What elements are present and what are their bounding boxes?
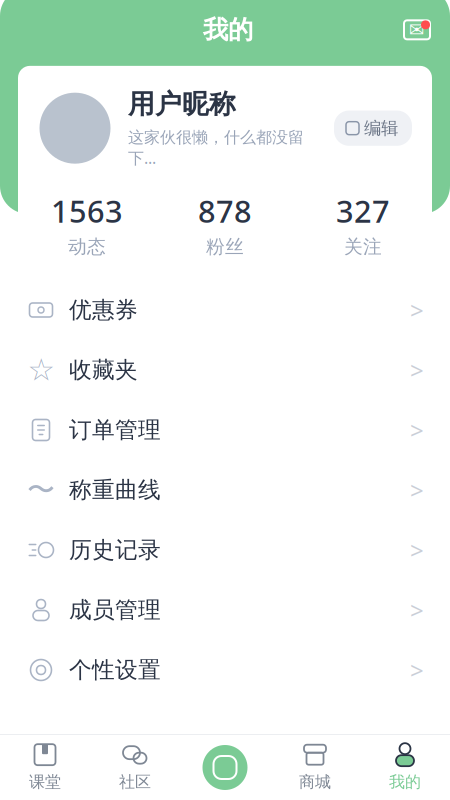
staticText: 编辑 (364, 117, 398, 139)
button[interactable]: 编辑 (334, 110, 412, 146)
button[interactable]: 历史记录 (0, 520, 450, 580)
button[interactable]: 商城 (270, 735, 360, 799)
button[interactable]: 1563 (18, 190, 156, 258)
staticText: > (410, 414, 424, 446)
staticText: 个性设置 (69, 656, 161, 684)
button[interactable]: 327 (294, 190, 432, 258)
button[interactable]: ☆ (0, 340, 450, 400)
staticText: 课堂 (29, 772, 61, 792)
button[interactable]: 订单管理 (0, 400, 450, 460)
staticText: 我的 (203, 14, 253, 45)
button[interactable]: 成员管理 (0, 580, 450, 640)
staticText: 成员管理 (69, 596, 161, 624)
staticText: 327 (336, 190, 390, 231)
staticText: 动态 (68, 235, 106, 258)
staticText: 历史记录 (69, 536, 161, 564)
staticText: 用户昵称 (128, 88, 236, 121)
button[interactable]: 课堂 (0, 735, 90, 799)
button[interactable]: 〜 (0, 460, 450, 520)
staticText: ✉ (409, 19, 425, 40)
button[interactable]: 我的 (360, 735, 450, 799)
staticText: 优惠券 (69, 296, 138, 324)
staticText: > (410, 294, 424, 326)
button[interactable]: 878 (156, 190, 294, 258)
staticText: 收藏夹 (69, 356, 138, 384)
staticText: 订单管理 (69, 416, 161, 444)
staticText: 〜 (27, 473, 55, 507)
staticText: 称重曲线 (69, 476, 161, 504)
button[interactable]: 消息 (396, 15, 438, 45)
staticText: 我的 (389, 772, 421, 792)
button[interactable]: 社区 (90, 735, 180, 799)
staticText: 1563 (51, 190, 123, 231)
staticText: ☆ (27, 353, 54, 387)
staticText: > (410, 654, 424, 686)
button[interactable]: 个性设置 (0, 640, 450, 700)
staticText: > (410, 534, 424, 566)
staticText: 878 (198, 190, 252, 231)
staticText: 商城 (299, 772, 331, 792)
staticText: 关注 (344, 235, 382, 258)
staticText: > (410, 354, 424, 386)
staticText: > (410, 474, 424, 506)
button[interactable]: 优惠券 (0, 280, 450, 340)
button[interactable]: 测量 (202, 745, 247, 790)
staticText: 这家伙很懒，什么都没留下... (128, 128, 304, 168)
staticText: 粉丝 (206, 235, 244, 258)
staticText: 社区 (119, 772, 151, 792)
staticText: > (410, 594, 424, 626)
